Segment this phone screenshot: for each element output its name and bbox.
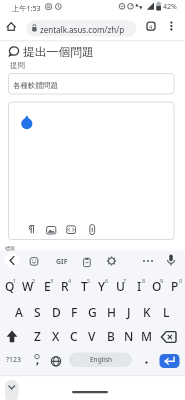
button[interactable]: Z	[28, 325, 46, 347]
button[interactable]	[5, 380, 19, 400]
button[interactable]: O	[148, 275, 166, 297]
staticText: ?123	[6, 355, 22, 365]
button[interactable]	[139, 352, 154, 368]
button[interactable]	[164, 253, 179, 268]
staticText: B	[107, 328, 115, 344]
button[interactable]	[165, 20, 178, 34]
staticText: Q	[5, 278, 15, 294]
button[interactable]: T	[75, 275, 93, 297]
button[interactable]: A	[10, 301, 28, 323]
button[interactable]: N	[120, 325, 138, 347]
staticText: S	[34, 304, 41, 320]
staticText: L	[163, 304, 170, 320]
staticText: H	[107, 304, 116, 320]
staticText: 上午1:53	[12, 3, 41, 13]
button[interactable]	[85, 222, 99, 237]
button[interactable]: R	[56, 275, 74, 297]
button[interactable]: B	[102, 325, 120, 347]
button[interactable]: P	[166, 275, 184, 297]
button[interactable]: E	[38, 275, 56, 297]
button[interactable]: D	[47, 301, 65, 323]
staticText: 9	[160, 277, 164, 284]
staticText: U	[116, 278, 125, 294]
staticText: O	[152, 278, 162, 294]
staticText: 標籤	[5, 245, 15, 251]
staticText: zentalk.asus.com/zh/p	[40, 24, 125, 35]
button[interactable]	[159, 326, 179, 347]
staticText: 4	[68, 277, 72, 284]
button[interactable]: Q	[1, 275, 19, 297]
button[interactable]	[25, 222, 39, 237]
button[interactable]: V	[83, 325, 101, 347]
button[interactable]	[5, 253, 20, 268]
staticText: J	[127, 304, 131, 320]
button[interactable]	[79, 254, 94, 267]
staticText: 7	[123, 277, 127, 284]
button[interactable]: F	[65, 301, 83, 323]
button[interactable]: X	[47, 325, 65, 347]
staticText: G	[88, 304, 97, 320]
staticText: F	[71, 304, 78, 320]
staticText: 各種軟體問題	[13, 81, 58, 90]
staticText: 5	[87, 277, 91, 284]
staticText: GIF	[56, 257, 68, 267]
staticText: 1	[13, 277, 17, 284]
button[interactable]	[160, 354, 180, 368]
staticText: D	[52, 304, 61, 320]
button[interactable]: GIF	[52, 254, 72, 270]
button[interactable]: J	[120, 301, 138, 323]
staticText: 提出一個問題	[23, 45, 94, 60]
button[interactable]: English	[74, 352, 128, 367]
staticText: Z	[34, 328, 41, 344]
staticText: 8	[142, 277, 146, 284]
button[interactable]: S	[28, 301, 46, 323]
button[interactable]: I	[130, 275, 148, 297]
staticText: W	[22, 278, 34, 294]
staticText: 0	[179, 277, 183, 284]
staticText: 2	[32, 277, 36, 284]
staticText: C	[70, 328, 78, 344]
staticText: V	[88, 328, 96, 344]
button[interactable]	[26, 20, 137, 37]
button[interactable]	[30, 350, 44, 368]
button[interactable]: G	[83, 301, 101, 323]
button[interactable]	[47, 350, 65, 368]
staticText: 6	[105, 277, 109, 284]
staticText: X	[52, 328, 60, 344]
button[interactable]	[45, 222, 59, 237]
staticText: T	[81, 278, 88, 294]
staticText: English	[90, 355, 113, 364]
button[interactable]: Y	[93, 275, 111, 297]
button[interactable]	[9, 102, 175, 240]
button[interactable]	[27, 253, 42, 268]
button[interactable]	[104, 253, 119, 268]
staticText: Y	[98, 278, 106, 294]
button[interactable]: M	[138, 325, 156, 347]
button[interactable]: ?123	[1, 350, 27, 370]
staticText: E	[44, 278, 51, 294]
staticText: K	[143, 304, 151, 320]
staticText: 42%	[163, 2, 177, 12]
button[interactable]: C	[65, 325, 83, 347]
staticText: R	[61, 278, 69, 294]
button[interactable]: H	[102, 301, 120, 323]
staticText: 4	[149, 23, 153, 30]
staticText: A	[15, 304, 23, 320]
staticText: N	[124, 328, 134, 344]
staticText: 提問	[10, 61, 25, 70]
staticText: P	[171, 278, 179, 294]
button[interactable]: 4	[145, 18, 157, 34]
button[interactable]: U	[111, 275, 129, 297]
button[interactable]	[141, 253, 156, 268]
staticText: I	[137, 278, 142, 294]
button[interactable]: K	[138, 301, 156, 323]
button[interactable]	[4, 20, 20, 34]
button[interactable]: L	[157, 301, 175, 323]
button[interactable]	[9, 74, 175, 95]
button[interactable]	[64, 222, 78, 237]
button[interactable]	[2, 326, 21, 347]
staticText: 3	[50, 277, 54, 284]
staticText: M	[141, 328, 153, 344]
button[interactable]: W	[19, 275, 37, 297]
